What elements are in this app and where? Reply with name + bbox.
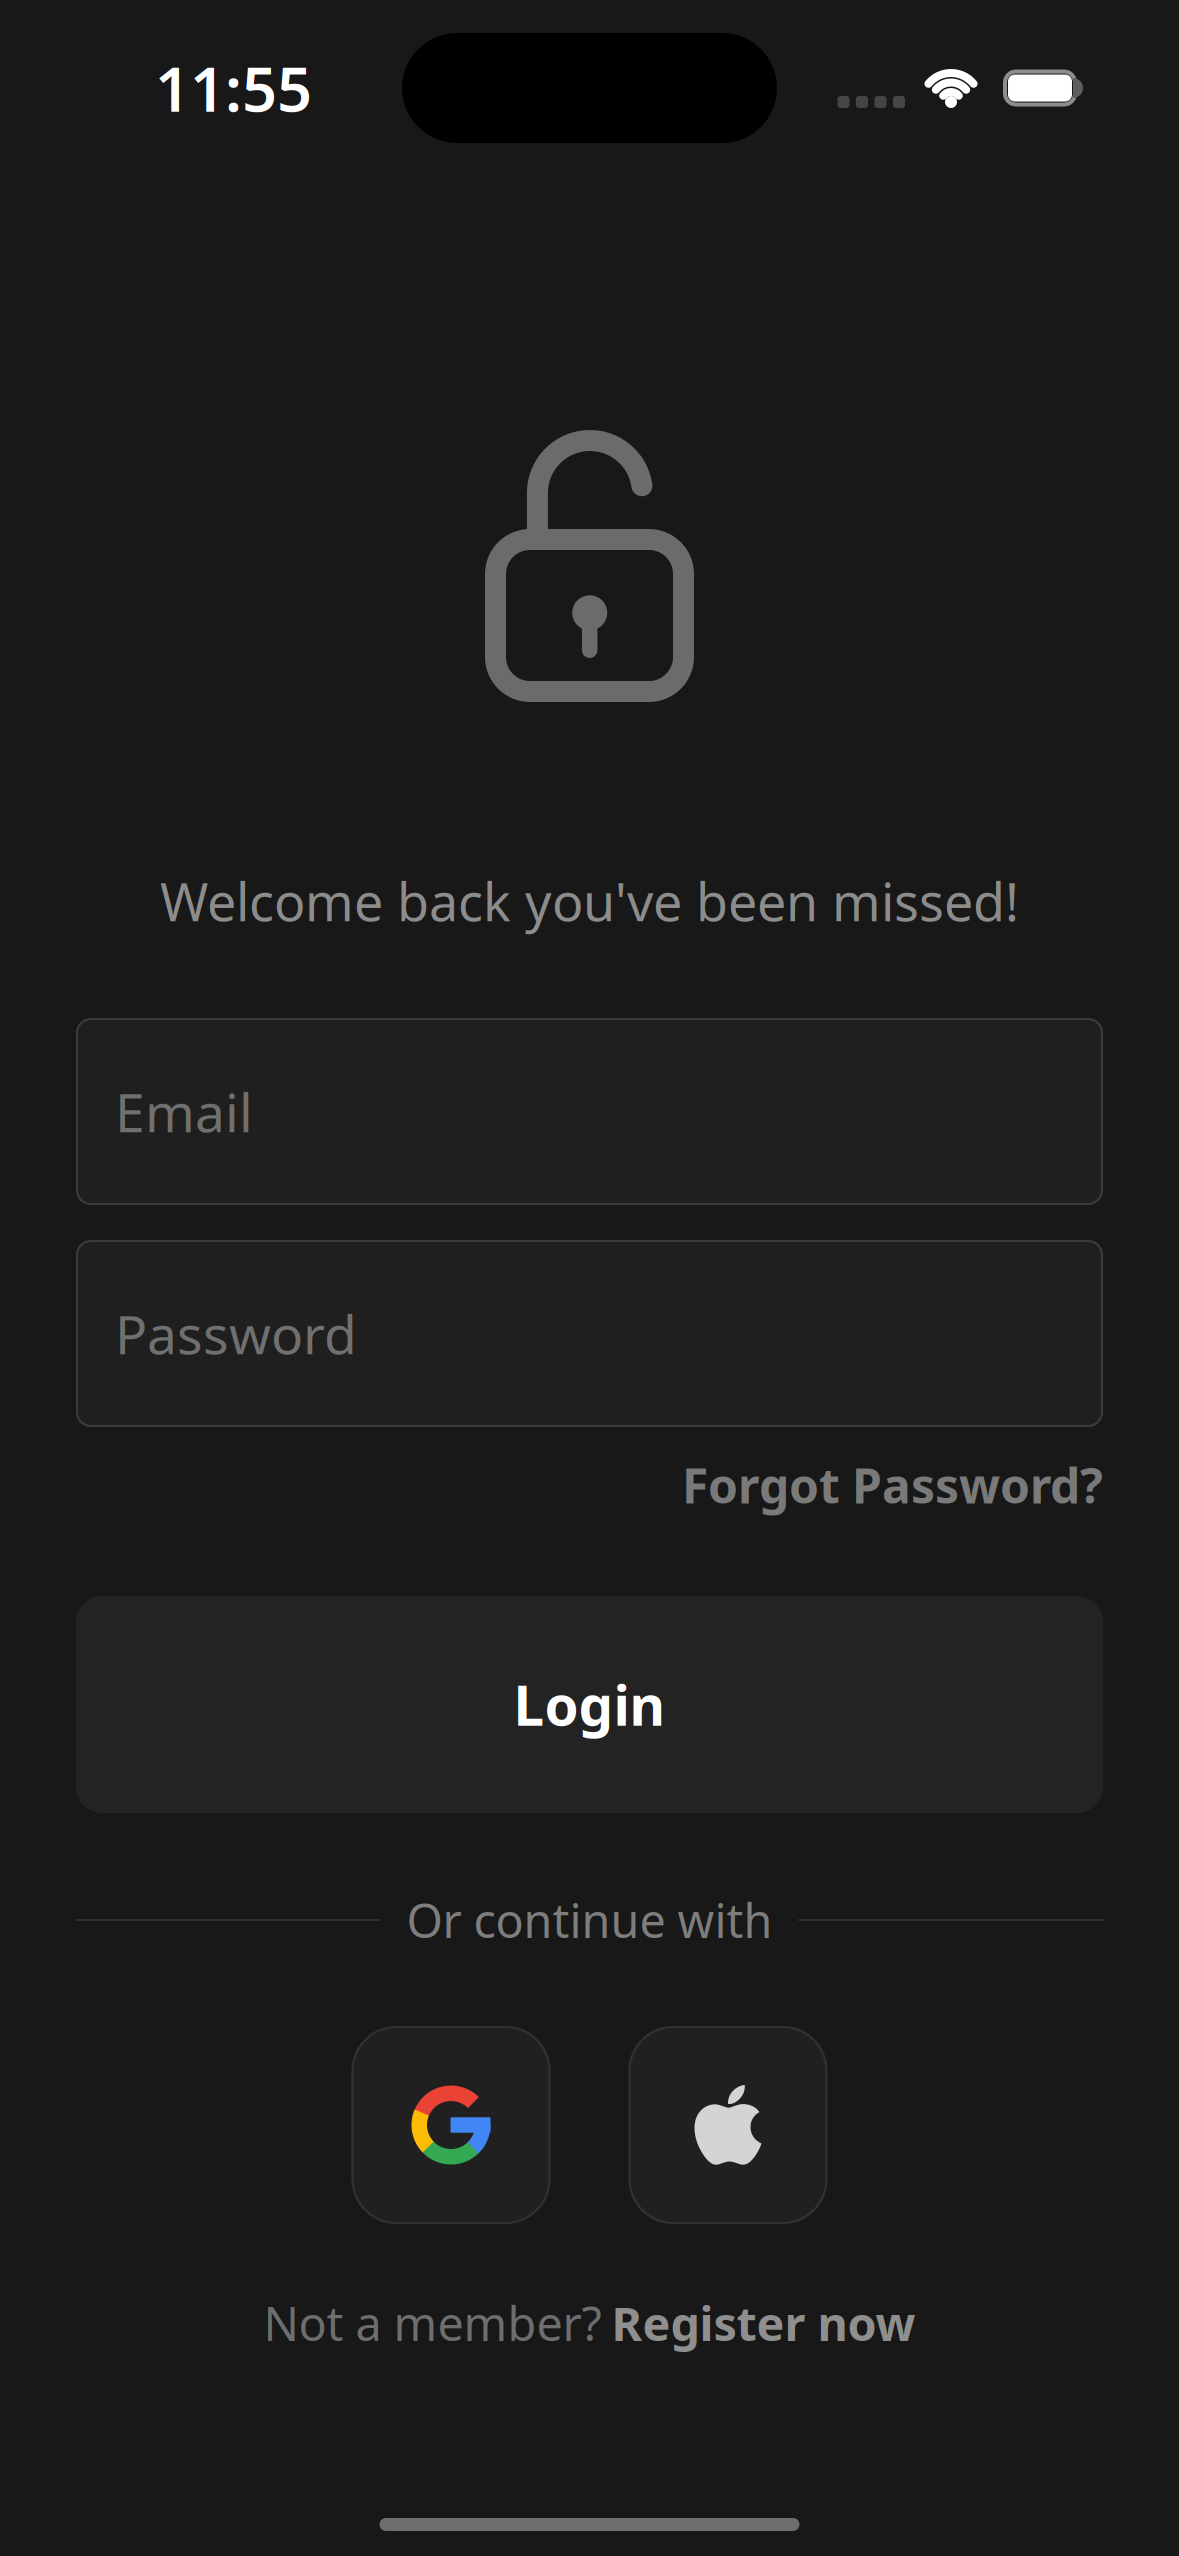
button[interactable]: Forgot Password? xyxy=(682,1453,1103,1517)
staticText: Welcome back you've been missed! xyxy=(160,866,1019,936)
staticText: Password xyxy=(115,1298,357,1369)
button[interactable]: Sign in with Apple xyxy=(628,2026,827,2224)
staticText: Not a member? xyxy=(263,2292,601,2354)
staticText: Or continue with xyxy=(406,1889,772,1951)
button[interactable]: Login xyxy=(0,1596,1179,1813)
staticText: Login xyxy=(513,1668,665,1741)
staticText: Email xyxy=(115,1076,253,1147)
button[interactable]: Not a member? xyxy=(263,2295,915,2351)
staticText: 11:55 xyxy=(155,47,312,129)
staticText: Forgot Password? xyxy=(682,1453,1103,1517)
staticText: Register now xyxy=(611,2292,915,2354)
button[interactable]: Sign in with Google xyxy=(351,2026,550,2224)
